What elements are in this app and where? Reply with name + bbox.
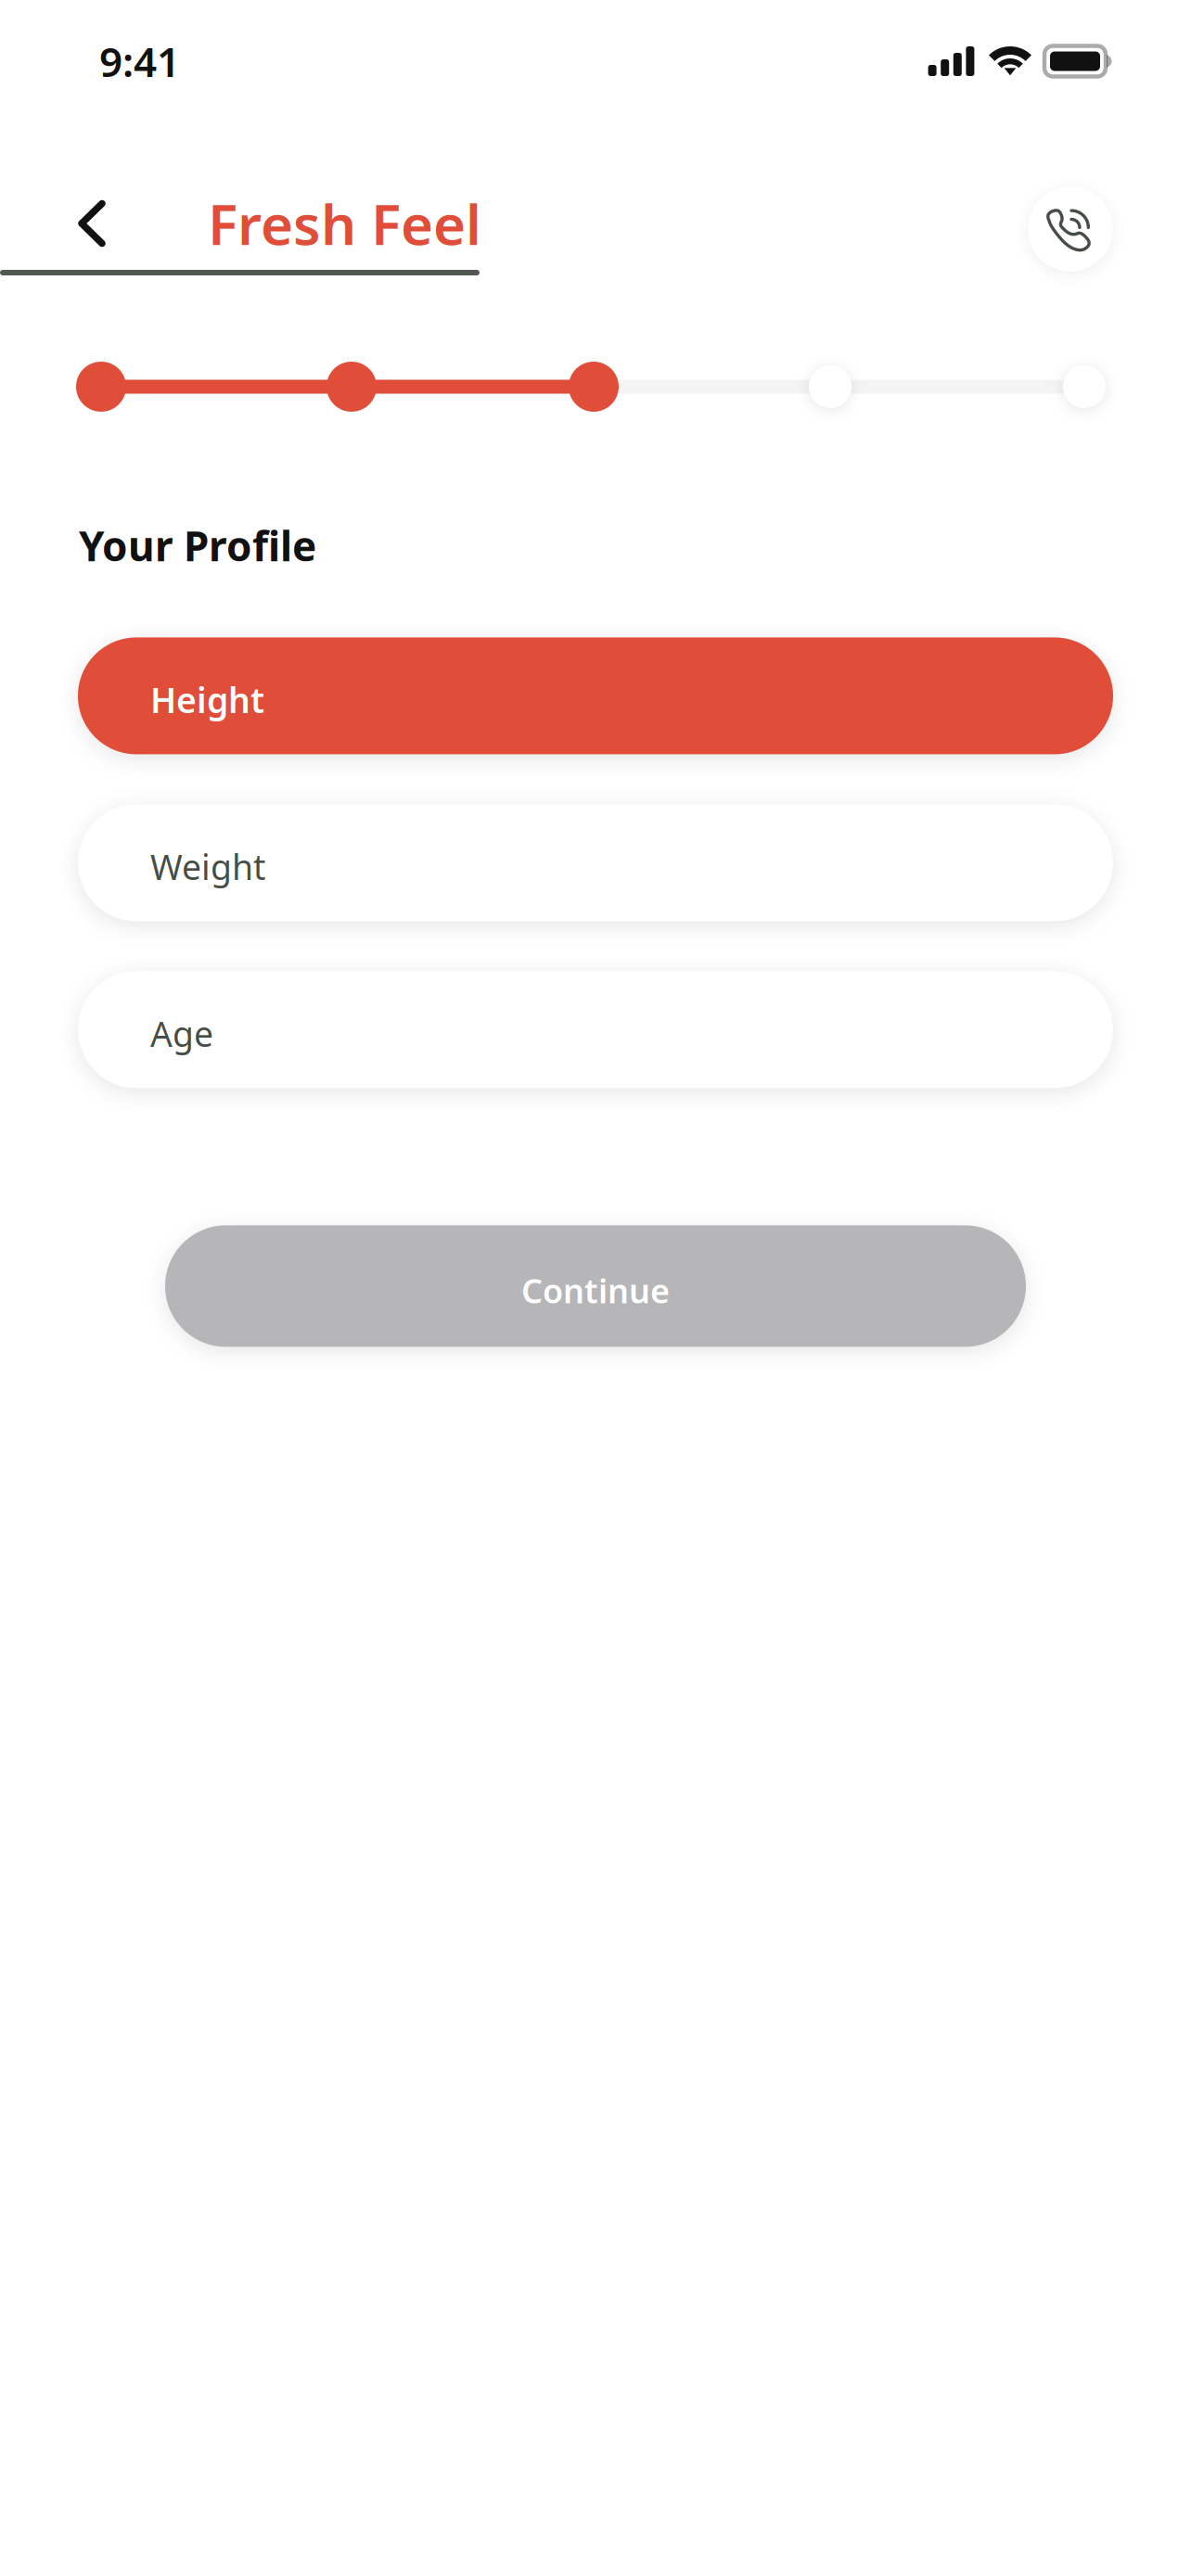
staticText: Weight: [150, 843, 265, 889]
staticText: Age: [150, 1010, 213, 1056]
button[interactable]: Back: [49, 181, 134, 266]
staticText: Height: [150, 677, 264, 723]
button[interactable]: Call: [1028, 174, 1113, 273]
staticText: Fresh Feel: [208, 187, 481, 260]
staticText: Your Profile: [79, 518, 316, 573]
button[interactable]: Height: [78, 637, 1113, 754]
button[interactable]: Age: [78, 971, 1113, 1088]
staticText: 9:41: [99, 34, 180, 88]
button[interactable]: Weight: [78, 804, 1113, 921]
button[interactable]: Continue: [165, 1225, 1026, 1347]
staticText: Continue: [521, 1268, 670, 1312]
